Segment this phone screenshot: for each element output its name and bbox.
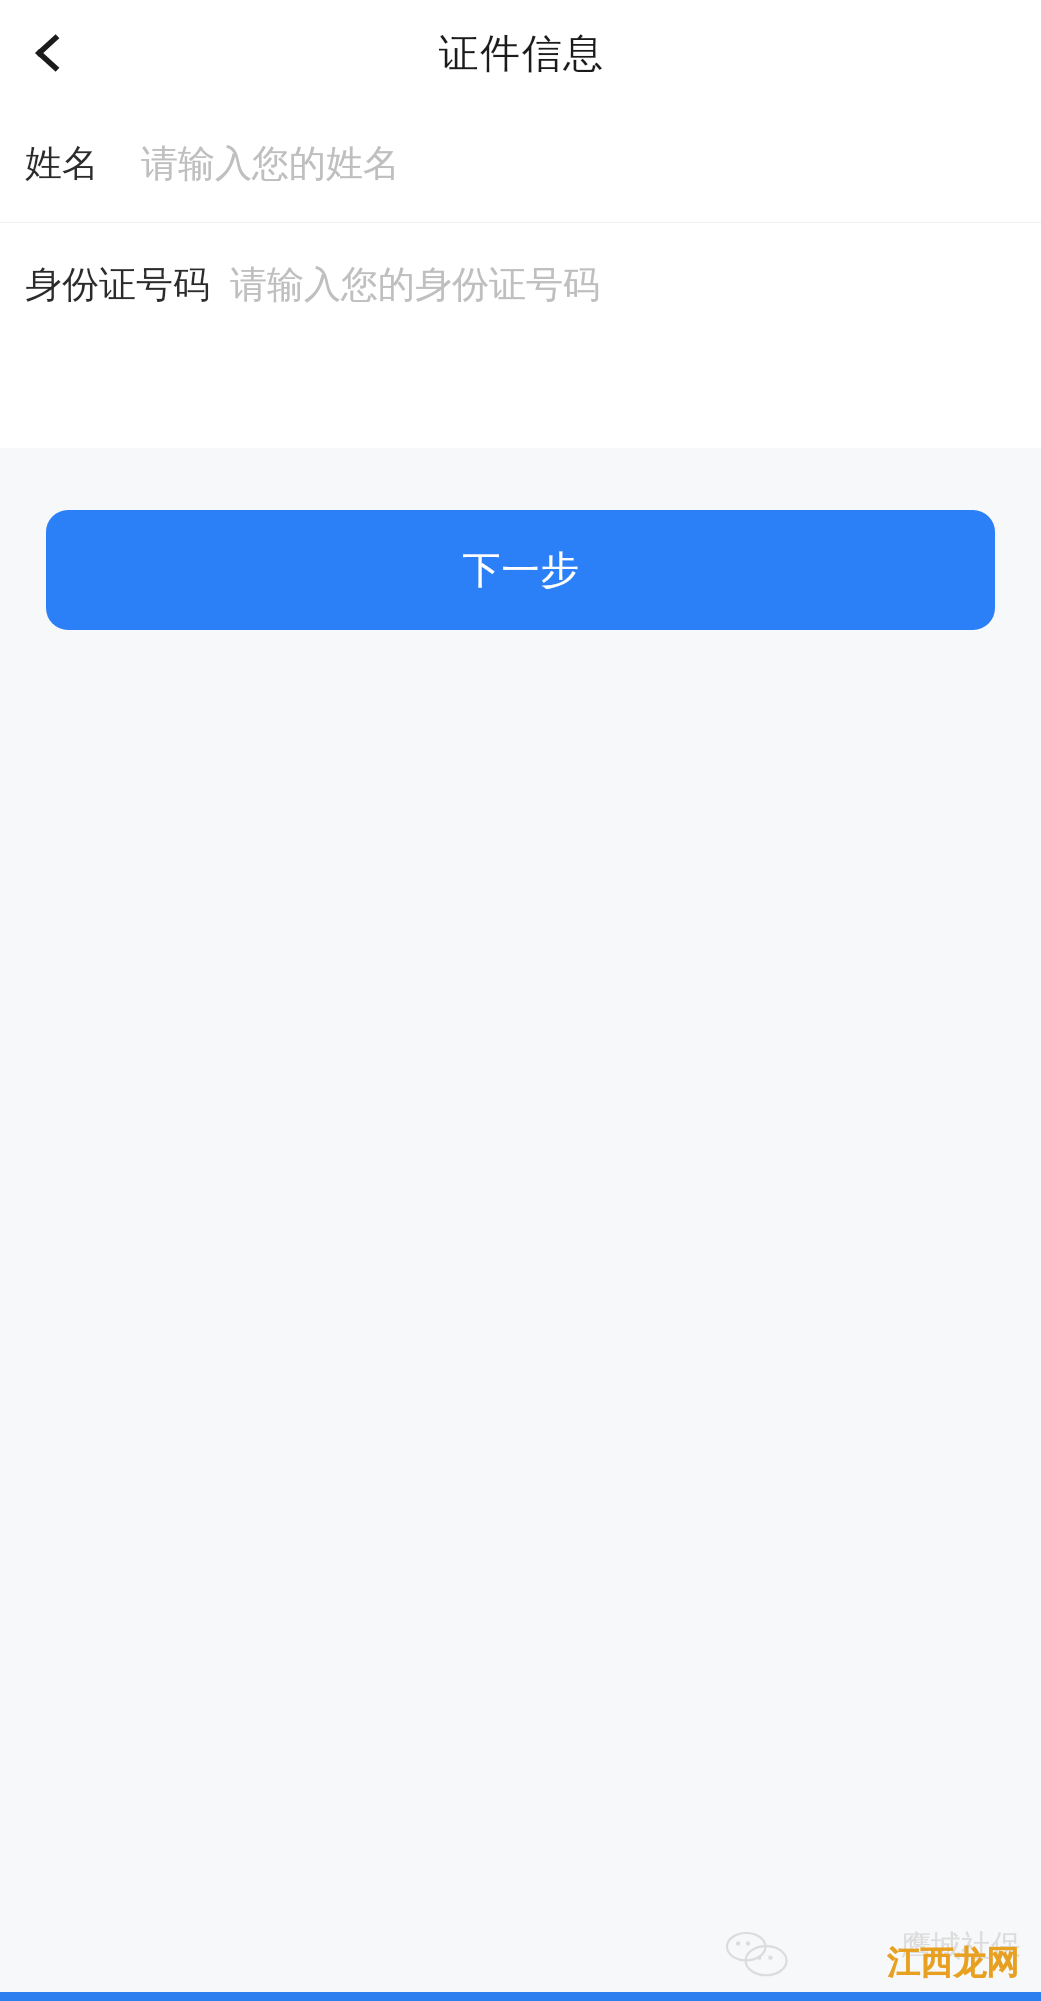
staticText: 下一步 — [462, 546, 579, 594]
staticText: 鹰城社保 — [901, 1927, 1021, 1965]
button[interactable]: 姓名 — [0, 105, 1041, 222]
staticText: 证件信息 — [438, 28, 604, 78]
button[interactable]: Back — [8, 13, 88, 93]
staticText: 江西龙网 — [887, 1942, 1019, 1984]
button[interactable]: 身份证号码 — [0, 223, 1041, 346]
staticText: 请输入您的身份证号码 — [230, 261, 600, 308]
staticText: 身份证号码 — [25, 261, 210, 308]
staticText: 请输入您的姓名 — [141, 140, 400, 187]
button[interactable]: 下一步 — [46, 510, 995, 630]
staticText: 姓名 — [25, 140, 99, 187]
